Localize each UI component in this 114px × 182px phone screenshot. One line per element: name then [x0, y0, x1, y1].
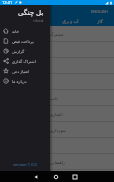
- staticText: version 1.0.0: [13, 162, 37, 167]
- button[interactable]: تلفن: [28, 17, 56, 26]
- button[interactable]: Home: [51, 172, 60, 181]
- button[interactable]: شهرداری: [0, 122, 114, 138]
- staticText: خانه: [12, 29, 19, 34]
- staticText: اعتباری: [50, 112, 63, 117]
- button[interactable]: پرداخت قبض: [0, 36, 50, 46]
- staticText: 12:01: [2, 0, 13, 5]
- staticText: گزارش: [12, 49, 25, 54]
- button[interactable]: راهنمایی: [0, 154, 114, 170]
- staticText: ENGLISH: [91, 9, 108, 14]
- button[interactable]: [0, 42, 114, 58]
- button[interactable]: Back: [31, 172, 40, 181]
- button[interactable]: امتیاز دهی: [0, 66, 50, 76]
- button[interactable]: مشترک: [0, 26, 114, 42]
- button[interactable]: اعتباری: [0, 106, 114, 122]
- button[interactable]: آب و برق: [56, 17, 85, 26]
- staticText: پرداخت قبض: [12, 39, 34, 44]
- staticText: اشتراک گذاری: [12, 59, 36, 64]
- staticText: بل چنگی: [18, 8, 44, 18]
- button[interactable]: ENGLISH: [89, 8, 110, 15]
- staticText: ثابت: [50, 96, 58, 101]
- staticText: مشترک: [50, 32, 64, 37]
- staticText: گاز: [97, 19, 103, 24]
- button[interactable]: [0, 138, 114, 154]
- button[interactable]: درباره ما: [0, 76, 50, 86]
- button[interactable]: [0, 58, 114, 74]
- button[interactable]: Recent apps: [70, 172, 79, 181]
- button[interactable]: گاز: [85, 17, 114, 26]
- button[interactable]: خانه: [0, 26, 50, 36]
- button[interactable]: گزارش: [0, 46, 50, 56]
- staticText: شهرداری: [50, 128, 67, 133]
- staticText: آب و برق: [62, 19, 79, 25]
- button[interactable]: ثابت: [0, 90, 114, 106]
- staticText: راهنمایی: [50, 160, 66, 165]
- staticText: nikotak: [33, 19, 44, 23]
- button[interactable]: اشتراک گذاری: [0, 56, 50, 66]
- button[interactable]: [0, 74, 114, 90]
- staticText: درباره ما: [12, 79, 27, 84]
- staticText: امتیاز دهی: [12, 69, 30, 74]
- staticText: تلفن: [38, 19, 46, 24]
